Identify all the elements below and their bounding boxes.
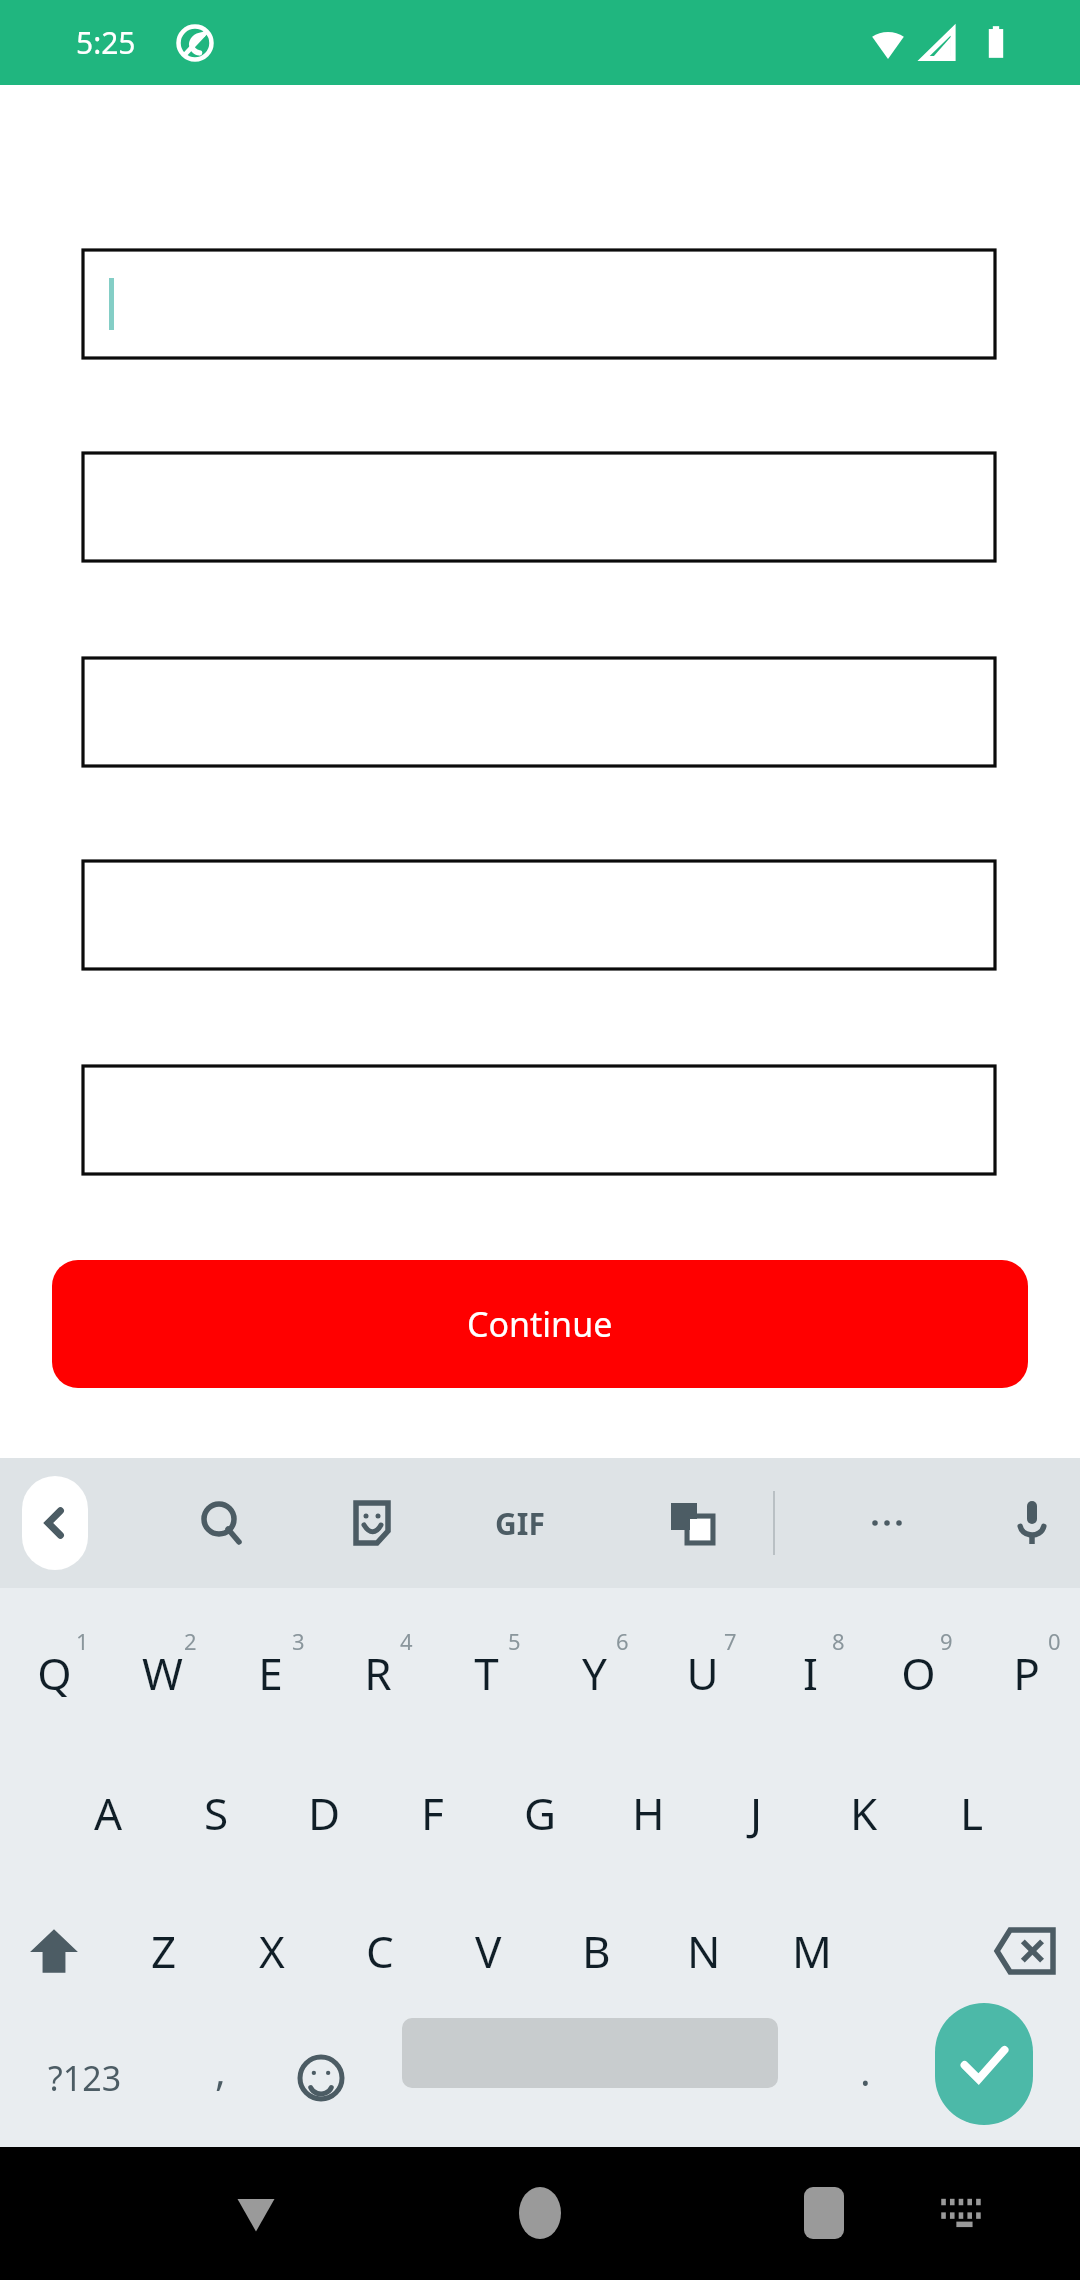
button[interactable]: P: [972, 1608, 1080, 1738]
staticText: J: [750, 1783, 763, 1843]
button[interactable]: N: [650, 1886, 758, 2016]
staticText: 5: [508, 1626, 521, 1656]
staticText: A: [94, 1783, 123, 1843]
button[interactable]: S: [162, 1748, 270, 1878]
button[interactable]: K: [810, 1748, 918, 1878]
staticText: Q: [37, 1643, 72, 1703]
staticText: L: [960, 1783, 984, 1843]
staticText: C: [366, 1921, 394, 1981]
button[interactable]: [83, 250, 995, 358]
button[interactable]: GIF: [470, 1476, 570, 1570]
button[interactable]: [83, 658, 995, 766]
staticText: V: [475, 1921, 502, 1981]
staticText: 3: [292, 1626, 305, 1656]
staticText: F: [421, 1783, 444, 1843]
staticText: 9: [940, 1626, 953, 1656]
button[interactable]: L: [918, 1748, 1026, 1878]
button[interactable]: Shift: [0, 1886, 108, 2016]
button[interactable]: V: [434, 1886, 542, 2016]
staticText: W: [142, 1643, 183, 1703]
button[interactable]: Continue: [52, 1260, 1028, 1388]
button[interactable]: [83, 453, 995, 561]
button[interactable]: Q: [0, 1608, 108, 1738]
staticText: Continue: [467, 1301, 613, 1347]
button[interactable]: Translate: [645, 1476, 739, 1570]
button[interactable]: D: [270, 1748, 378, 1878]
staticText: 5:25: [76, 22, 136, 63]
button[interactable]: Voice input: [985, 1476, 1079, 1570]
staticText: H: [632, 1783, 665, 1843]
button[interactable]: ?123: [0, 2018, 170, 2138]
staticText: ,: [215, 2043, 226, 2097]
button[interactable]: Search: [175, 1476, 269, 1570]
staticText: N: [687, 1921, 721, 1981]
button[interactable]: Back: [22, 1476, 88, 1570]
button[interactable]: Back: [216, 2173, 296, 2253]
button[interactable]: M: [758, 1886, 866, 2016]
staticText: GIF: [495, 1503, 545, 1544]
button[interactable]: B: [542, 1886, 650, 2016]
button[interactable]: Enter: [935, 2003, 1033, 2125]
staticText: 8: [832, 1626, 845, 1656]
button[interactable]: A: [54, 1748, 162, 1878]
staticText: S: [204, 1783, 229, 1843]
button[interactable]: Emoji: [272, 2018, 370, 2138]
staticText: D: [308, 1783, 341, 1843]
button[interactable]: Y: [540, 1608, 648, 1738]
staticText: K: [850, 1783, 878, 1843]
staticText: 6: [616, 1626, 629, 1656]
staticText: I: [803, 1643, 818, 1703]
staticText: M: [792, 1921, 832, 1981]
button[interactable]: .: [820, 2018, 910, 2138]
staticText: T: [474, 1643, 499, 1703]
staticText: E: [258, 1643, 283, 1703]
staticText: .: [860, 2043, 871, 2097]
button[interactable]: J: [702, 1748, 810, 1878]
button[interactable]: [83, 1066, 995, 1174]
staticText: R: [364, 1643, 392, 1703]
staticText: O: [901, 1643, 936, 1703]
button[interactable]: Backspace: [970, 1886, 1080, 2016]
staticText: B: [582, 1921, 611, 1981]
button[interactable]: More options: [840, 1476, 934, 1570]
button[interactable]: Stickers: [325, 1476, 419, 1570]
staticText: 1: [76, 1626, 89, 1656]
button[interactable]: [83, 861, 995, 969]
staticText: Y: [582, 1643, 607, 1703]
button[interactable]: Switch keyboard: [920, 2177, 1010, 2251]
button[interactable]: H: [594, 1748, 702, 1878]
staticText: X: [259, 1921, 285, 1981]
staticText: 2: [184, 1626, 197, 1656]
staticText: 7: [724, 1626, 737, 1656]
button[interactable]: F: [378, 1748, 486, 1878]
button[interactable]: ,: [175, 2018, 265, 2138]
staticText: P: [1013, 1643, 1040, 1703]
button[interactable]: U: [648, 1608, 756, 1738]
button[interactable]: G: [486, 1748, 594, 1878]
staticText: U: [686, 1643, 719, 1703]
staticText: 4: [400, 1626, 413, 1656]
button[interactable]: I: [756, 1608, 864, 1738]
button[interactable]: E: [216, 1608, 324, 1738]
button[interactable]: X: [218, 1886, 326, 2016]
button[interactable]: Recents: [784, 2173, 864, 2253]
button[interactable]: O: [864, 1608, 972, 1738]
button[interactable]: W: [108, 1608, 216, 1738]
staticText: 0: [1048, 1626, 1061, 1656]
button[interactable]: R: [324, 1608, 432, 1738]
button[interactable]: T: [432, 1608, 540, 1738]
button[interactable]: Home: [500, 2173, 580, 2253]
staticText: G: [524, 1783, 557, 1843]
button[interactable]: C: [326, 1886, 434, 2016]
button[interactable]: Z: [110, 1886, 218, 2016]
staticText: Z: [151, 1921, 177, 1981]
staticText: ?123: [48, 2055, 122, 2101]
